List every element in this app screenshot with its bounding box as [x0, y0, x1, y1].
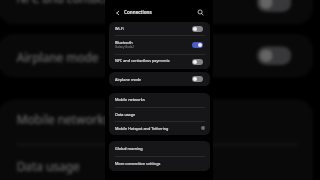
button[interactable]: NFC and contactless payments: [109, 54, 210, 69]
button[interactable]: Mobile Hotspot and Tethering: [109, 121, 210, 135]
staticText: Mobile networks: [115, 97, 205, 102]
button[interactable]: Off: [192, 59, 203, 65]
staticText: Galaxy Buds2: [115, 45, 135, 49]
staticText: NFC and contactless payments: [115, 58, 170, 63]
staticText: NFC and contactless payments: [17, 0, 188, 6]
button[interactable]: Bluetooth: [109, 35, 210, 54]
staticText: Mobile networks: [17, 112, 297, 127]
button[interactable]: Airplane mode: [109, 72, 210, 86]
staticText: Global roaming: [115, 146, 205, 151]
button[interactable]: Search: [196, 8, 205, 17]
staticText: Airplane mode: [17, 49, 101, 65]
button[interactable]: On: [192, 42, 203, 48]
staticText: Bluetooth: [115, 40, 133, 45]
button[interactable]: Airplane mode: [0, 34, 313, 77]
staticText: Mobile Hotspot and Tethering: [115, 126, 201, 131]
button[interactable]: Data usage: [109, 107, 210, 121]
button[interactable]: Off: [257, 0, 291, 12]
staticText: Wi-Fi: [115, 26, 124, 31]
button[interactable]: Off: [257, 46, 291, 65]
button[interactable]: Off: [192, 26, 203, 32]
staticText: Airplane mode: [115, 77, 142, 82]
button[interactable]: Navigate up: [113, 8, 122, 17]
button[interactable]: Wi-Fi: [109, 22, 210, 35]
button[interactable]: Connections: [124, 5, 179, 19]
staticText: Data usage: [115, 112, 205, 117]
button[interactable]: Data usage: [0, 143, 313, 180]
button[interactable]: Mobile networks: [109, 93, 210, 107]
staticText: More connection settings: [115, 161, 205, 166]
button[interactable]: NFC and contactless payments: [0, 0, 313, 24]
button[interactable]: Mobile networks: [0, 99, 313, 143]
button[interactable]: Global roaming: [109, 141, 210, 156]
staticText: Data usage: [17, 159, 297, 174]
button[interactable]: More connection settings: [109, 156, 210, 171]
button[interactable]: Off: [192, 76, 203, 82]
staticText: Connections: [124, 9, 152, 15]
